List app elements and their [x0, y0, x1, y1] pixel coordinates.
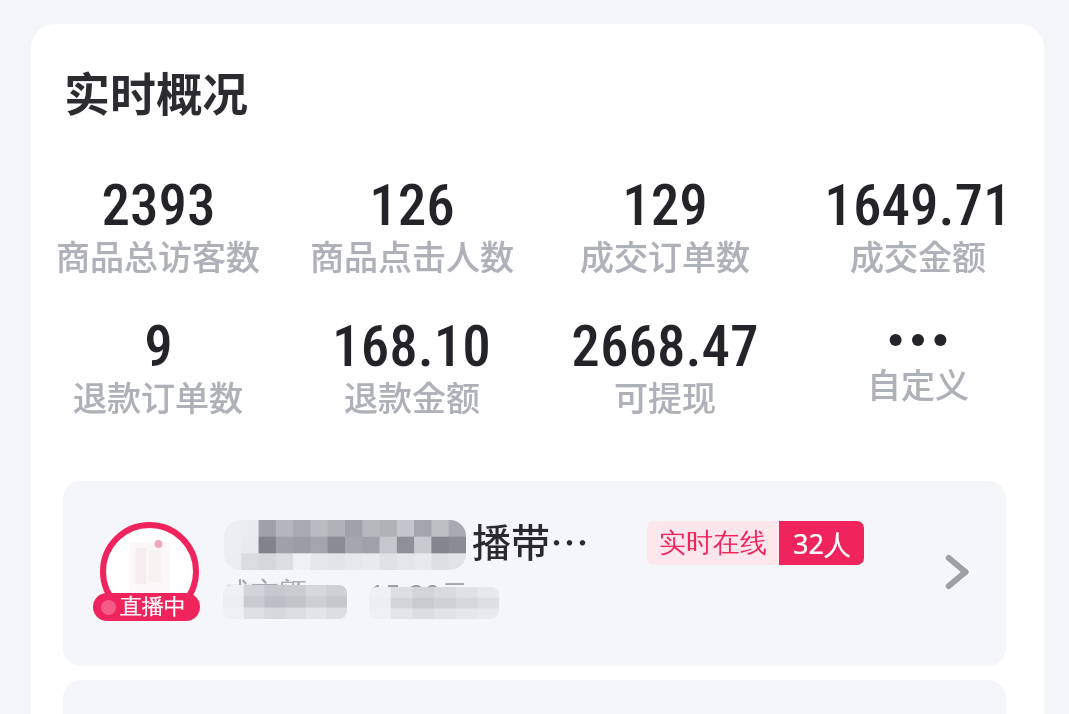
staticText: 播带… — [472, 512, 590, 568]
staticText: 15.20元 — [369, 575, 469, 613]
button[interactable]: 自定义 — [791, 313, 1044, 416]
button[interactable]: Open live detail — [932, 550, 976, 594]
staticText: 退款金额 — [344, 372, 480, 421]
staticText: 2668.47 — [571, 313, 759, 380]
button[interactable]: 直播中 — [63, 481, 1006, 666]
staticText: 直播中 — [120, 593, 186, 621]
staticText: 129 — [622, 172, 708, 239]
staticText: 成交订单数 — [580, 231, 750, 280]
button[interactable]: 实时在线 — [647, 521, 864, 565]
staticText: 1649.71 — [824, 172, 1012, 239]
staticText: 9 — [144, 313, 173, 380]
staticText: 126 — [369, 172, 455, 239]
staticText: 32人 — [793, 525, 851, 562]
staticText: 168.10 — [332, 313, 491, 380]
button[interactable]: 2393 — [31, 172, 285, 288]
button[interactable]: 1649.71 — [791, 172, 1044, 288]
staticText: 商品点击人数 — [310, 231, 514, 280]
staticText: 实时在线 — [659, 526, 767, 560]
staticText: 实时概况 — [64, 58, 248, 125]
staticText: 2393 — [101, 172, 216, 239]
button[interactable]: 168.10 — [285, 313, 538, 429]
staticText: 自定义 — [867, 359, 969, 408]
staticText: 商品总访客数 — [56, 231, 260, 280]
staticText: 成交金额 — [850, 231, 986, 280]
button[interactable]: 2668.47 — [538, 313, 791, 429]
button[interactable]: 9 — [31, 313, 285, 429]
button[interactable]: 126 — [285, 172, 538, 288]
button[interactable]: 129 — [538, 172, 791, 288]
staticText: 成交额 — [223, 575, 307, 610]
staticText: 退款订单数 — [73, 372, 243, 421]
staticText: 可提现 — [614, 372, 716, 421]
